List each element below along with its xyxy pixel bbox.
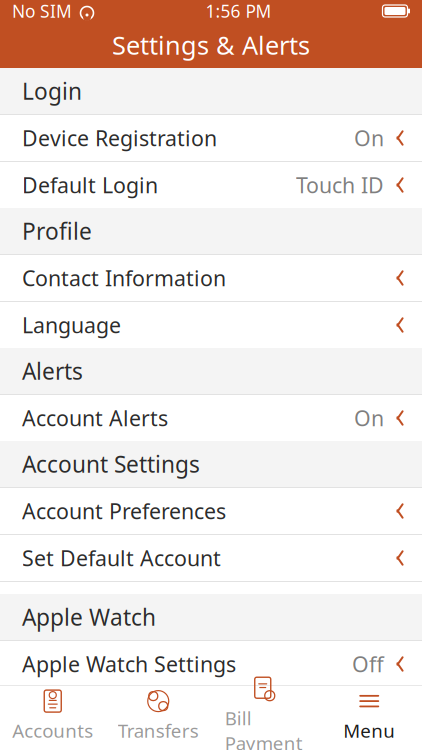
staticText: Account Preferences (22, 497, 226, 525)
staticText: Menu (343, 718, 395, 743)
staticText: Apple Watch Settings (22, 650, 236, 678)
staticText: Profile (22, 216, 92, 246)
staticText: Apple Watch (22, 602, 156, 632)
staticText: Contact Information (22, 264, 226, 292)
staticText: Transfers (118, 718, 199, 743)
button[interactable]: Language (0, 302, 422, 348)
staticText: Settings & Alerts (112, 28, 310, 62)
button[interactable]: Contact Information (0, 255, 422, 301)
button[interactable]: Apple Watch Settings (0, 641, 422, 687)
staticText: Account Alerts (22, 404, 168, 432)
staticText: Accounts (12, 718, 93, 743)
button[interactable]: Default Login (0, 162, 422, 208)
staticText: 1:56 PM (205, 0, 271, 22)
staticText: Off (352, 650, 384, 678)
staticText: Language (22, 311, 121, 339)
button[interactable]: Transfers (105, 686, 211, 750)
staticText: On (354, 404, 384, 432)
button[interactable]: Accounts (0, 686, 105, 750)
button[interactable]: Account Preferences (0, 488, 422, 534)
button[interactable]: Menu (316, 686, 422, 750)
staticText: Account Settings (22, 449, 200, 479)
button[interactable]: Bill Payment (211, 686, 316, 750)
staticText: On (354, 124, 384, 152)
staticText: Device Registration (22, 124, 217, 152)
staticText: Default Login (22, 171, 158, 199)
button[interactable]: Set Default Account (0, 535, 422, 581)
button[interactable]: Account Alerts (0, 395, 422, 441)
staticText: Bill Payment (225, 706, 303, 750)
staticText: Set Default Account (22, 544, 221, 572)
staticText: No SIM (12, 0, 72, 22)
staticText: Touch ID (296, 171, 384, 199)
button[interactable]: Device Registration (0, 115, 422, 161)
staticText: Login (22, 76, 82, 106)
staticText: Alerts (22, 356, 83, 386)
